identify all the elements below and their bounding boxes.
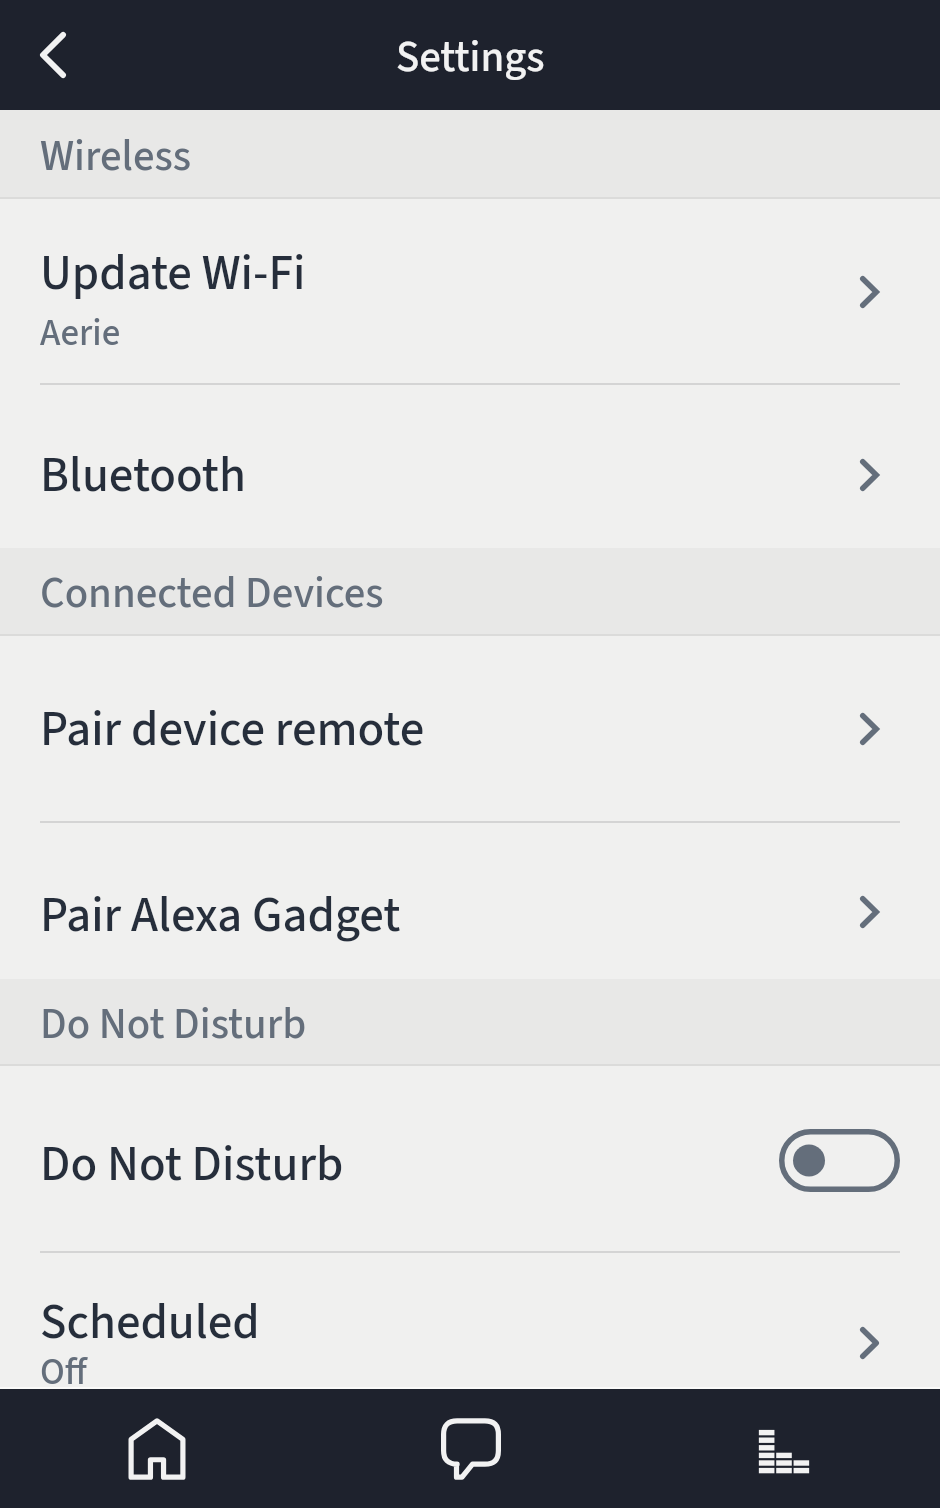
button[interactable]: Do Not Disturb [0, 1066, 940, 1251]
staticText: Do Not Disturb [40, 1130, 344, 1200]
button[interactable]: Back [18, 20, 88, 90]
button[interactable]: Now playing [627, 1389, 940, 1508]
button[interactable]: Do Not Disturb, off [779, 1129, 900, 1192]
button[interactable]: Home [0, 1389, 314, 1508]
staticText: Aerie [40, 307, 121, 360]
button[interactable]: Conversations [314, 1389, 627, 1508]
staticText: Off [40, 1346, 87, 1399]
button[interactable]: Pair Alexa Gadget [0, 823, 940, 979]
staticText: Scheduled [40, 1288, 260, 1358]
button[interactable]: Scheduled [0, 1253, 940, 1389]
staticText: Wireless [40, 126, 192, 187]
staticText: Pair Alexa Gadget [40, 881, 401, 951]
staticText: Update Wi-Fi [40, 239, 306, 309]
staticText: Pair device remote [40, 695, 425, 765]
staticText: Do Not Disturb [40, 994, 307, 1055]
button[interactable]: Update Wi-Fi [0, 199, 940, 383]
staticText: Connected Devices [40, 563, 384, 624]
button[interactable]: Pair device remote [0, 636, 940, 821]
staticText: Settings [396, 27, 545, 88]
staticText: Bluetooth [40, 441, 247, 511]
button[interactable]: Bluetooth [0, 385, 940, 548]
